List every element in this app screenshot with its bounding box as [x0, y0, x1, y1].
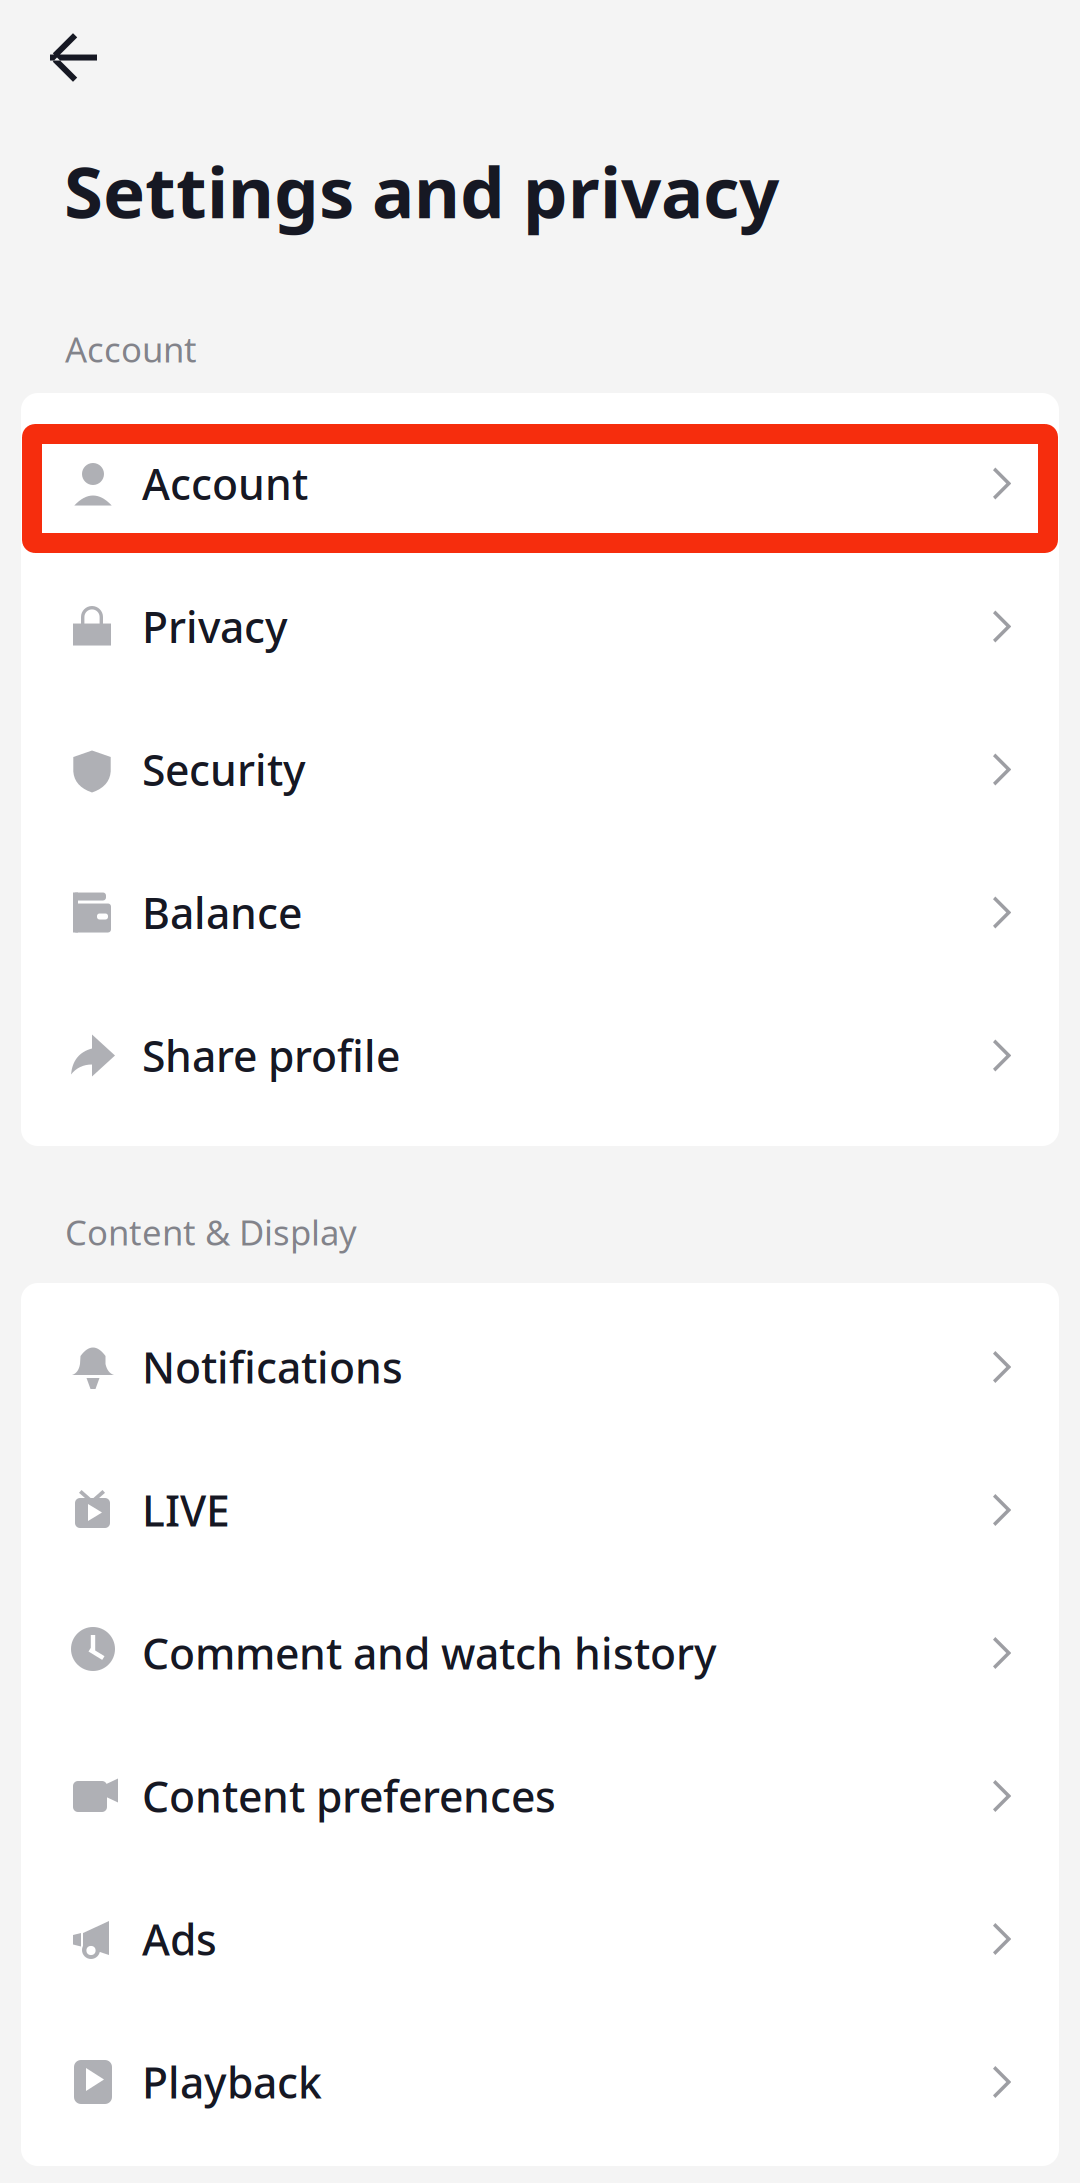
staticText: Ads	[142, 1911, 217, 1967]
staticText: Security	[142, 741, 306, 798]
staticText: Account	[142, 455, 308, 512]
button[interactable]: Balance	[21, 841, 1059, 984]
staticText: Share profile	[142, 1027, 400, 1084]
button[interactable]: Comment and watch history	[21, 1581, 1059, 1724]
staticText: Account	[65, 326, 197, 372]
button[interactable]: Back	[0, 0, 132, 108]
button[interactable]: Playback	[21, 2010, 1059, 2153]
staticText: Balance	[142, 884, 302, 941]
staticText: Comment and watch history	[142, 1625, 717, 1681]
staticText: Playback	[142, 2054, 322, 2110]
button[interactable]: Share profile	[21, 984, 1059, 1127]
staticText: Content preferences	[142, 1768, 556, 1824]
staticText: LIVE	[142, 1482, 230, 1538]
staticText: Content & Display	[65, 1209, 357, 1255]
staticText: Notifications	[142, 1339, 403, 1395]
button[interactable]: Account	[21, 412, 1059, 555]
button[interactable]: LIVE	[21, 1438, 1059, 1581]
button[interactable]: Content preferences	[21, 1724, 1059, 1867]
button[interactable]: Privacy	[21, 555, 1059, 698]
staticText: Settings and privacy	[64, 144, 779, 238]
button[interactable]: Ads	[21, 1867, 1059, 2010]
staticText: Privacy	[142, 598, 288, 655]
button[interactable]: Notifications	[21, 1295, 1059, 1438]
button[interactable]: Security	[21, 698, 1059, 841]
